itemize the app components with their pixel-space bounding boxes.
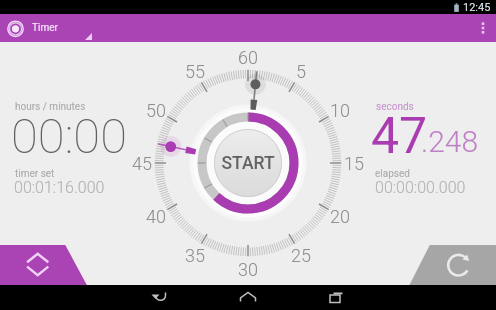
staticText: 30 (238, 259, 258, 280)
staticText: 25 (291, 245, 311, 266)
staticText: START (221, 153, 275, 174)
staticText: 40 (146, 206, 166, 227)
staticText: elapsed (375, 168, 410, 180)
button[interactable]: Adjust timer (0, 245, 88, 285)
staticText: 15 (344, 153, 364, 174)
staticText: 55 (185, 61, 205, 82)
button[interactable]: More options (470, 14, 496, 42)
staticText: 00:01:16.000 (14, 178, 105, 197)
staticText: 60 (238, 47, 258, 68)
staticText: 12:45 (463, 1, 491, 14)
button[interactable]: Reset timer (408, 245, 496, 285)
staticText: .248 (421, 124, 479, 159)
staticText: 45 (132, 153, 152, 174)
button[interactable]: Recent apps (316, 285, 356, 310)
button[interactable]: Home (228, 285, 268, 310)
staticText: 00:00 (11, 108, 127, 165)
staticText: timer set (15, 168, 55, 180)
staticText: 20 (330, 206, 350, 227)
staticText: 10 (330, 100, 350, 121)
button[interactable]: START (214, 129, 282, 197)
staticText: 35 (185, 245, 205, 266)
staticText: 50 (146, 100, 166, 121)
button[interactable]: Back (140, 285, 180, 310)
staticText: 5 (296, 61, 306, 82)
staticText: seconds (376, 101, 414, 113)
staticText: Timer (32, 22, 58, 34)
staticText: 47 (371, 107, 428, 166)
staticText: hours / minutes (15, 101, 86, 113)
staticText: 00:00:00.000 (375, 178, 466, 197)
